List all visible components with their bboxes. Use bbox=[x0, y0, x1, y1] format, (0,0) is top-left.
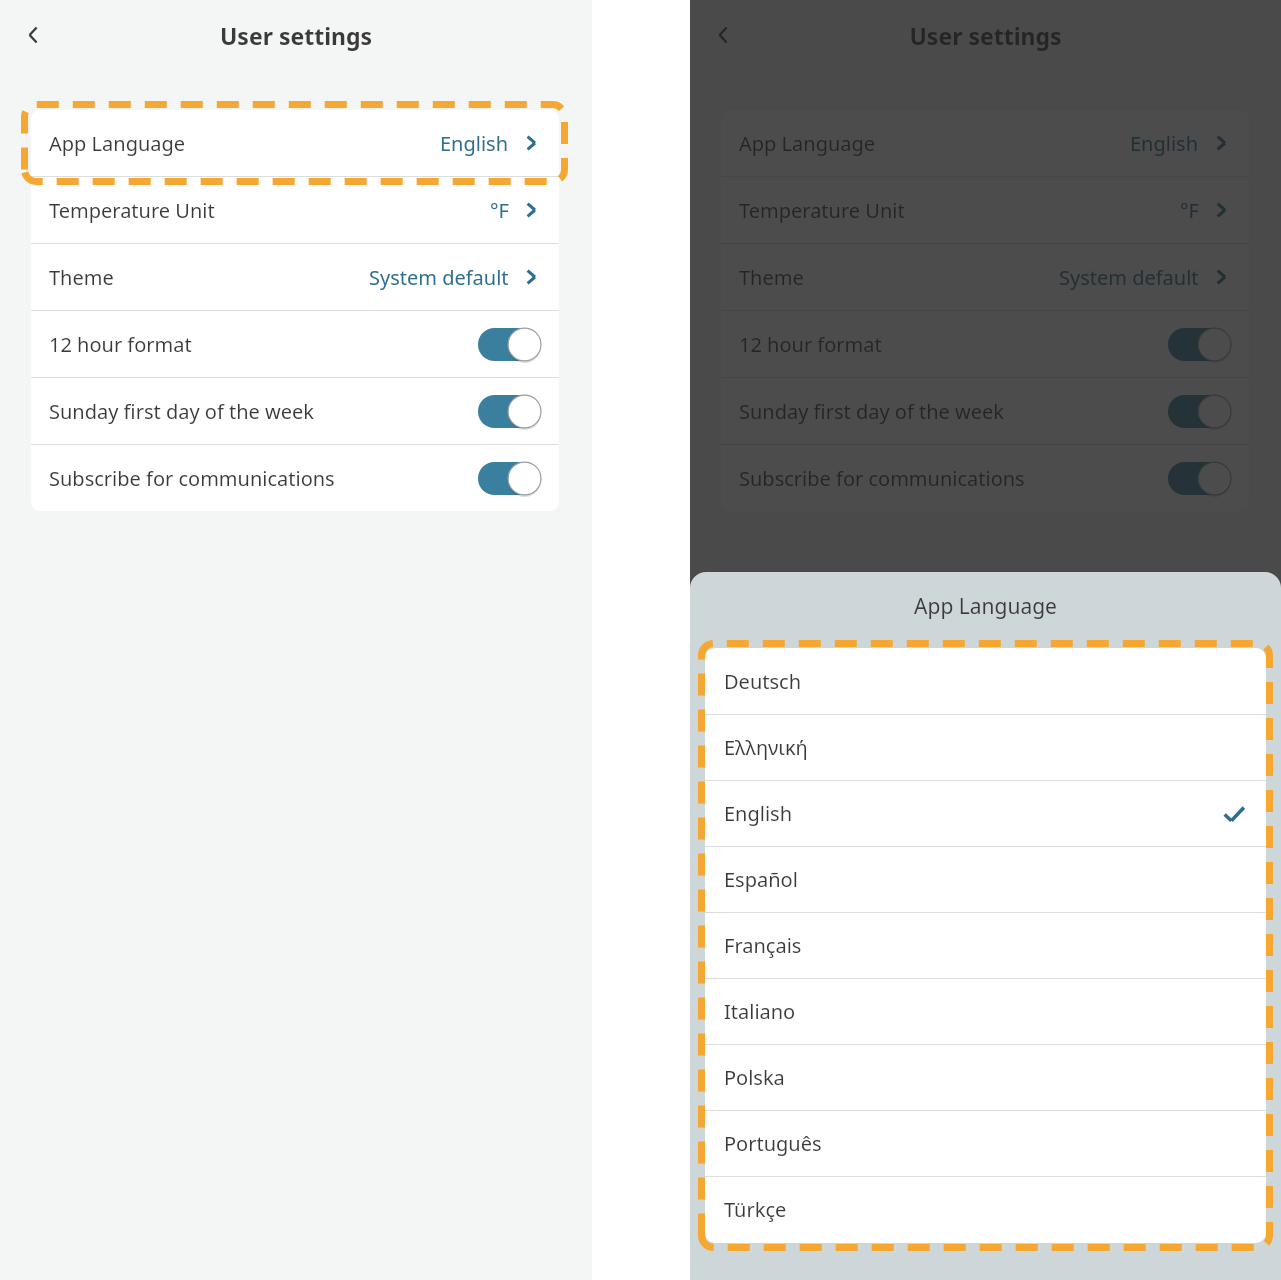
button[interactable]: Theme bbox=[721, 244, 1249, 310]
staticText: Ελληνική bbox=[724, 734, 808, 761]
staticText: System default bbox=[369, 264, 509, 291]
button[interactable]: App Language bbox=[721, 110, 1249, 176]
staticText: English bbox=[724, 800, 793, 827]
staticText: User settings bbox=[690, 20, 1281, 51]
button[interactable]: Temperature Unit bbox=[721, 177, 1249, 243]
button[interactable]: Sunday first day of the week bbox=[721, 378, 1249, 444]
button[interactable]: App Language bbox=[31, 110, 559, 176]
staticText: App Language bbox=[739, 130, 876, 157]
staticText: System default bbox=[1059, 264, 1199, 291]
button[interactable]: 12 hour format bbox=[721, 311, 1249, 377]
staticText: Español bbox=[724, 866, 798, 893]
button[interactable]: Ελληνική bbox=[705, 715, 1266, 780]
staticText: Subscribe for communications bbox=[739, 465, 1025, 492]
button[interactable]: Theme bbox=[31, 244, 559, 310]
staticText: Deutsch bbox=[724, 668, 801, 695]
staticText: Theme bbox=[49, 264, 114, 291]
staticText: Sunday first day of the week bbox=[49, 398, 315, 425]
button[interactable]: Subscribe for communications bbox=[721, 445, 1249, 511]
button[interactable]: Subscribe for communications bbox=[31, 445, 559, 511]
button[interactable]: Polska bbox=[705, 1045, 1266, 1110]
staticText: Français bbox=[724, 932, 802, 959]
button[interactable]: Português bbox=[705, 1111, 1266, 1176]
staticText: App Language bbox=[49, 130, 186, 157]
staticText: Italiano bbox=[724, 998, 796, 1025]
button[interactable]: Sunday first day of the week bbox=[31, 378, 559, 444]
button[interactable]: Deutsch bbox=[705, 648, 1266, 714]
button[interactable]: 12 hour format bbox=[31, 311, 559, 377]
button[interactable]: Español bbox=[705, 847, 1266, 912]
staticText: Temperature Unit bbox=[49, 197, 215, 224]
button[interactable]: English bbox=[705, 781, 1266, 846]
button[interactable]: Türkçe bbox=[705, 1177, 1266, 1242]
button[interactable]: Temperature Unit bbox=[31, 177, 559, 243]
staticText: Polska bbox=[724, 1064, 785, 1091]
staticText: English bbox=[440, 130, 509, 157]
staticText: °F bbox=[1180, 197, 1199, 224]
staticText: 12 hour format bbox=[739, 331, 882, 358]
staticText: Türkçe bbox=[724, 1196, 787, 1223]
button[interactable]: Français bbox=[705, 913, 1266, 978]
staticText: 12 hour format bbox=[49, 331, 192, 358]
staticText: Theme bbox=[739, 264, 804, 291]
button[interactable]: Back bbox=[12, 13, 56, 57]
staticText: User settings bbox=[0, 20, 592, 51]
staticText: Português bbox=[724, 1130, 822, 1157]
staticText: English bbox=[1130, 130, 1199, 157]
staticText: Subscribe for communications bbox=[49, 465, 335, 492]
button[interactable]: Italiano bbox=[705, 979, 1266, 1044]
button[interactable]: Back bbox=[702, 13, 746, 57]
staticText: App Language bbox=[690, 592, 1281, 621]
staticText: Temperature Unit bbox=[739, 197, 905, 224]
staticText: °F bbox=[490, 197, 509, 224]
staticText: Sunday first day of the week bbox=[739, 398, 1005, 425]
